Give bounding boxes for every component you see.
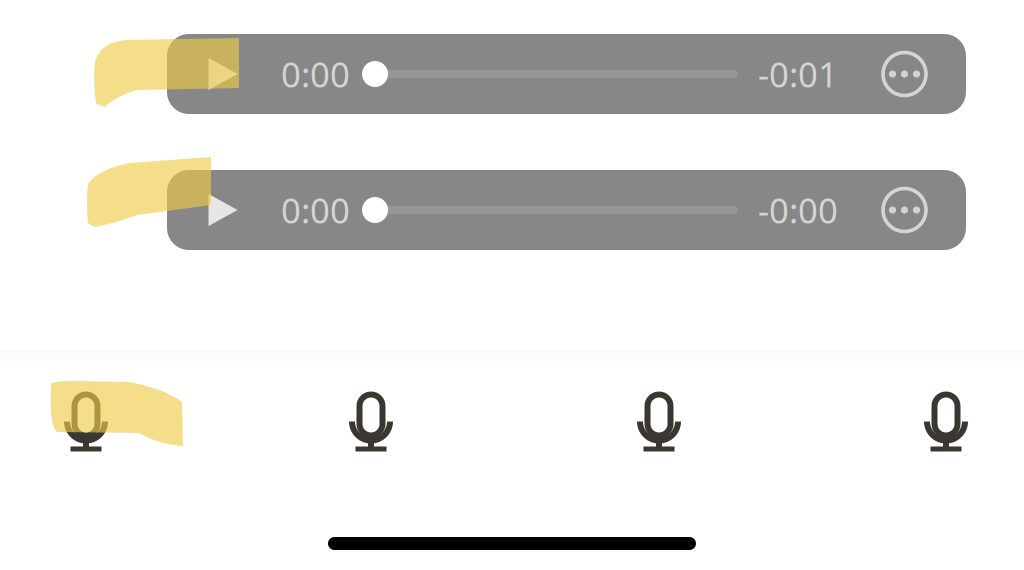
- staticText: -0:01: [758, 51, 838, 97]
- button[interactable]: 0:00: [167, 34, 966, 114]
- button[interactable]: Notes: [515, 356, 803, 460]
- button[interactable]: 0:00: [167, 170, 966, 250]
- button[interactable]: Search: [229, 356, 515, 460]
- staticText: 0:00: [281, 51, 350, 97]
- button[interactable]: Compose: [803, 356, 1024, 460]
- button[interactable]: More options: [883, 188, 926, 231]
- button[interactable]: More options: [883, 52, 926, 95]
- staticText: -0:00: [758, 187, 838, 233]
- staticText: 0:00: [281, 187, 350, 233]
- button[interactable]: Record: [0, 356, 229, 460]
